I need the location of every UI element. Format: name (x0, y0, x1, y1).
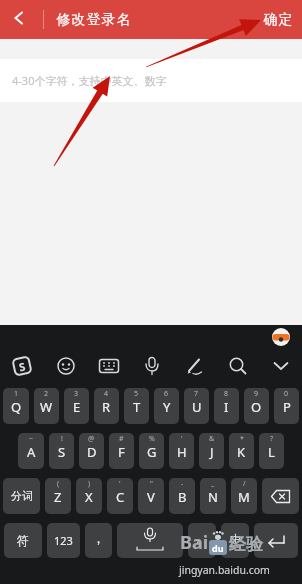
button[interactable]: S (0, 344, 44, 388)
staticText: D (87, 443, 97, 461)
staticText: J (210, 443, 214, 461)
staticText: S (58, 443, 66, 461)
staticText: " (150, 479, 153, 489)
staticText: 中 (230, 532, 241, 546)
staticText: S (18, 358, 28, 374)
staticText: 1 (14, 389, 19, 399)
staticText: W (40, 398, 53, 416)
button[interactable]: ? (259, 433, 284, 469)
staticText: ， (92, 530, 105, 546)
staticText: O (251, 398, 262, 416)
button[interactable] (216, 344, 259, 388)
staticText: 分词 (11, 489, 33, 503)
staticText: Y (163, 398, 171, 416)
staticText: % (149, 434, 155, 444)
button[interactable]: 3 (64, 388, 89, 424)
button[interactable]: 4-30个字符，支持中英文、数字 (0, 59, 302, 102)
staticText: Z (54, 488, 62, 506)
button[interactable]: * (229, 433, 254, 469)
button[interactable] (130, 344, 173, 388)
staticText: ) (88, 479, 91, 489)
button[interactable]: 。 (188, 523, 216, 558)
staticText: * (240, 434, 244, 444)
staticText: ' (119, 479, 121, 489)
button[interactable]: 中 (221, 523, 249, 558)
staticText: 123 (54, 533, 73, 548)
button[interactable]: 7 (184, 388, 209, 424)
staticText: - (181, 479, 184, 489)
staticText: 5 (134, 389, 139, 399)
button[interactable]: & (199, 433, 224, 469)
staticText: ' (181, 434, 183, 444)
staticText: 4-30个字符，支持中英文、数字 (12, 73, 167, 88)
button[interactable]: 确定 (254, 0, 302, 39)
button[interactable]: 符 (4, 523, 42, 558)
button[interactable]: ' (107, 478, 133, 514)
staticText: H (177, 443, 187, 461)
staticText: F (118, 443, 125, 461)
staticText: R (102, 398, 111, 416)
button[interactable]: 9 (244, 388, 269, 424)
button[interactable] (173, 344, 216, 388)
button[interactable]: 6 (154, 388, 179, 424)
staticText: 9 (254, 389, 259, 399)
button[interactable]: 0 (274, 388, 299, 424)
button[interactable]: ( (45, 478, 71, 514)
button[interactable]: 8 (214, 388, 239, 424)
button[interactable]: 5 (124, 388, 149, 424)
button[interactable]: 4 (94, 388, 119, 424)
button[interactable] (259, 344, 302, 388)
button[interactable] (117, 523, 183, 558)
staticText: 修改登录名 (56, 11, 131, 29)
staticText: 。 (196, 530, 209, 546)
staticText: L (268, 443, 275, 461)
button[interactable] (44, 344, 87, 388)
button[interactable]: @ (79, 433, 104, 469)
button[interactable]: / (231, 478, 257, 514)
staticText: 确定 (263, 11, 293, 29)
staticText: 0 (284, 389, 289, 399)
button[interactable]: ) (76, 478, 102, 514)
staticText: 8 (224, 389, 229, 399)
staticText: K (237, 443, 246, 461)
button[interactable]: " (138, 478, 164, 514)
button[interactable] (254, 523, 298, 558)
button[interactable]: _ (200, 478, 226, 514)
staticText: _ (211, 479, 215, 489)
staticText: ! (61, 434, 63, 444)
button[interactable]: 1 (3, 388, 29, 424)
staticText: du (212, 542, 224, 554)
staticText: 4 (104, 389, 109, 399)
button[interactable]: ' (169, 433, 194, 469)
staticText: ( (57, 479, 60, 489)
button[interactable]: 123 (47, 523, 80, 558)
staticText: N (208, 488, 218, 506)
staticText: Q (11, 398, 22, 416)
staticText: E (73, 398, 81, 416)
staticText: 7 (194, 389, 199, 399)
staticText: & (209, 434, 215, 444)
button[interactable] (0, 0, 40, 39)
staticText: B (178, 488, 187, 506)
staticText: # (119, 434, 124, 444)
staticText: ? (270, 434, 274, 444)
staticText: 3 (74, 389, 79, 399)
staticText: U (192, 398, 202, 416)
button[interactable] (262, 478, 299, 514)
staticText: 2 (44, 389, 49, 399)
button[interactable]: % (139, 433, 164, 469)
staticText: @ (88, 434, 95, 444)
button[interactable]: 2 (34, 388, 59, 424)
button[interactable]: - (169, 478, 195, 514)
staticText: 符 (17, 533, 29, 548)
staticText: 经验 (229, 534, 263, 555)
staticText: C (116, 488, 125, 506)
button[interactable]: 分词 (3, 478, 40, 514)
button[interactable] (87, 344, 130, 388)
button[interactable]: ， (85, 523, 112, 558)
staticText: T (133, 398, 141, 416)
button[interactable]: ! (49, 433, 74, 469)
button[interactable]: # (109, 433, 134, 469)
staticText: / (243, 479, 246, 489)
button[interactable]: ~ (18, 433, 44, 469)
